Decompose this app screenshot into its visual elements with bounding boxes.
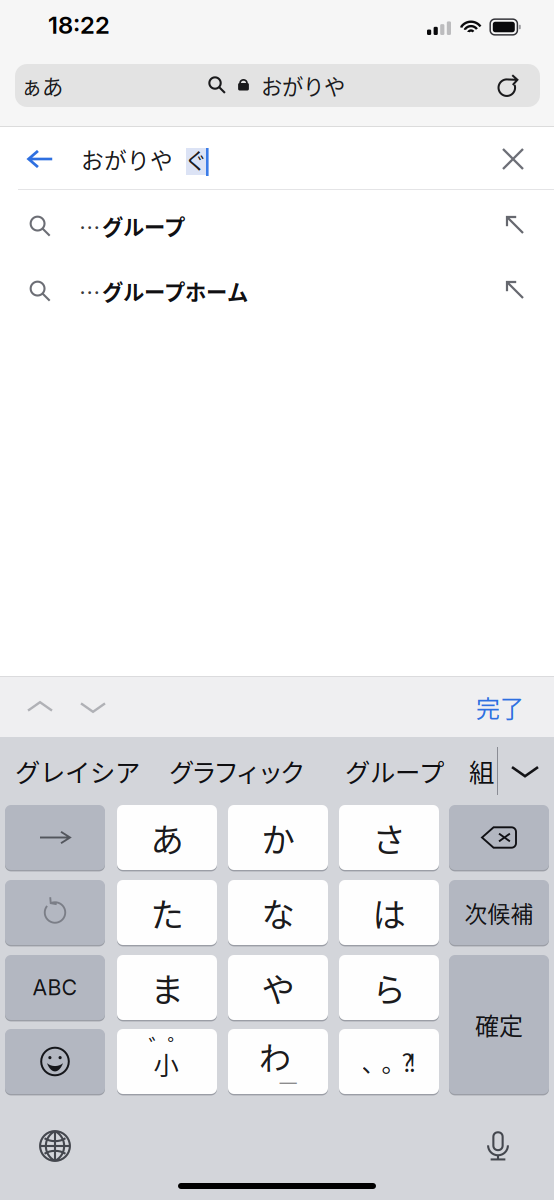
- button[interactable]: は: [339, 880, 439, 946]
- button[interactable]: さ: [339, 805, 439, 871]
- button[interactable]: [449, 805, 549, 871]
- button[interactable]: 確定: [449, 955, 549, 1095]
- staticText: ゜: [167, 1030, 190, 1062]
- staticText: …: [79, 211, 100, 241]
- button[interactable]: ABC: [5, 955, 105, 1021]
- button[interactable]: 小: [117, 1029, 217, 1095]
- button[interactable]: …: [0, 259, 554, 323]
- staticText: グループホーム: [102, 276, 248, 306]
- staticText: グループ: [345, 753, 444, 789]
- staticText: あ: [150, 813, 183, 862]
- staticText: ABC: [32, 975, 77, 1000]
- staticText: グラフィック: [169, 753, 305, 789]
- staticText: 18:22: [48, 10, 110, 39]
- staticText: 、。?!: [361, 1044, 416, 1079]
- button[interactable]: [5, 805, 105, 871]
- button[interactable]: や: [228, 955, 328, 1021]
- button[interactable]: ら: [339, 955, 439, 1021]
- button[interactable]: な: [228, 880, 328, 946]
- staticText: 次候補: [464, 896, 533, 929]
- staticText: さ: [372, 813, 405, 862]
- button[interactable]: More candidates: [500, 737, 550, 805]
- button[interactable]: か: [228, 805, 328, 871]
- staticText: 小: [153, 1046, 178, 1082]
- staticText: ＿: [279, 1061, 296, 1087]
- button[interactable]: 、。?!: [339, 1029, 439, 1095]
- button[interactable]: [5, 1029, 105, 1095]
- button[interactable]: Change keyboard: [23, 1120, 87, 1172]
- button[interactable]: Dictation: [466, 1120, 530, 1172]
- button[interactable]: わ: [228, 1029, 328, 1095]
- staticText: か: [261, 813, 294, 862]
- staticText: ゛: [148, 1030, 171, 1062]
- button[interactable]: あ: [117, 805, 217, 871]
- button[interactable]: ま: [117, 955, 217, 1021]
- staticText: ぐ: [184, 143, 207, 175]
- button[interactable]: Previous field: [16, 683, 64, 731]
- staticText: ら: [372, 963, 405, 1012]
- button[interactable]: た: [117, 880, 217, 946]
- staticText: な: [261, 888, 294, 937]
- staticText: 確定: [475, 1007, 523, 1042]
- staticText: おがりや: [261, 70, 345, 101]
- button[interactable]: グラフィック: [169, 737, 299, 805]
- staticText: …: [79, 276, 100, 306]
- button[interactable]: ぁあ: [15, 64, 540, 107]
- button[interactable]: …: [0, 194, 554, 258]
- staticText: た: [150, 888, 183, 937]
- staticText: おがりや: [81, 143, 173, 175]
- button[interactable]: Clear search: [485, 130, 541, 188]
- button[interactable]: [5, 880, 105, 946]
- staticText: や: [261, 963, 294, 1012]
- staticText: わ: [259, 1033, 291, 1079]
- staticText: グループ: [102, 211, 185, 241]
- staticText: 完了: [476, 690, 524, 724]
- button[interactable]: Back: [12, 130, 68, 188]
- staticText: は: [372, 888, 405, 937]
- staticText: ま: [150, 963, 183, 1012]
- button[interactable]: グレイシア: [15, 737, 137, 805]
- staticText: 組: [469, 753, 494, 789]
- button[interactable]: Next field: [69, 683, 117, 731]
- button[interactable]: 次候補: [449, 880, 549, 946]
- button[interactable]: グループ: [345, 737, 444, 805]
- staticText: ぁあ: [21, 70, 63, 101]
- button[interactable]: 組: [469, 737, 497, 805]
- button[interactable]: 完了: [462, 680, 538, 734]
- staticText: グレイシア: [15, 753, 140, 789]
